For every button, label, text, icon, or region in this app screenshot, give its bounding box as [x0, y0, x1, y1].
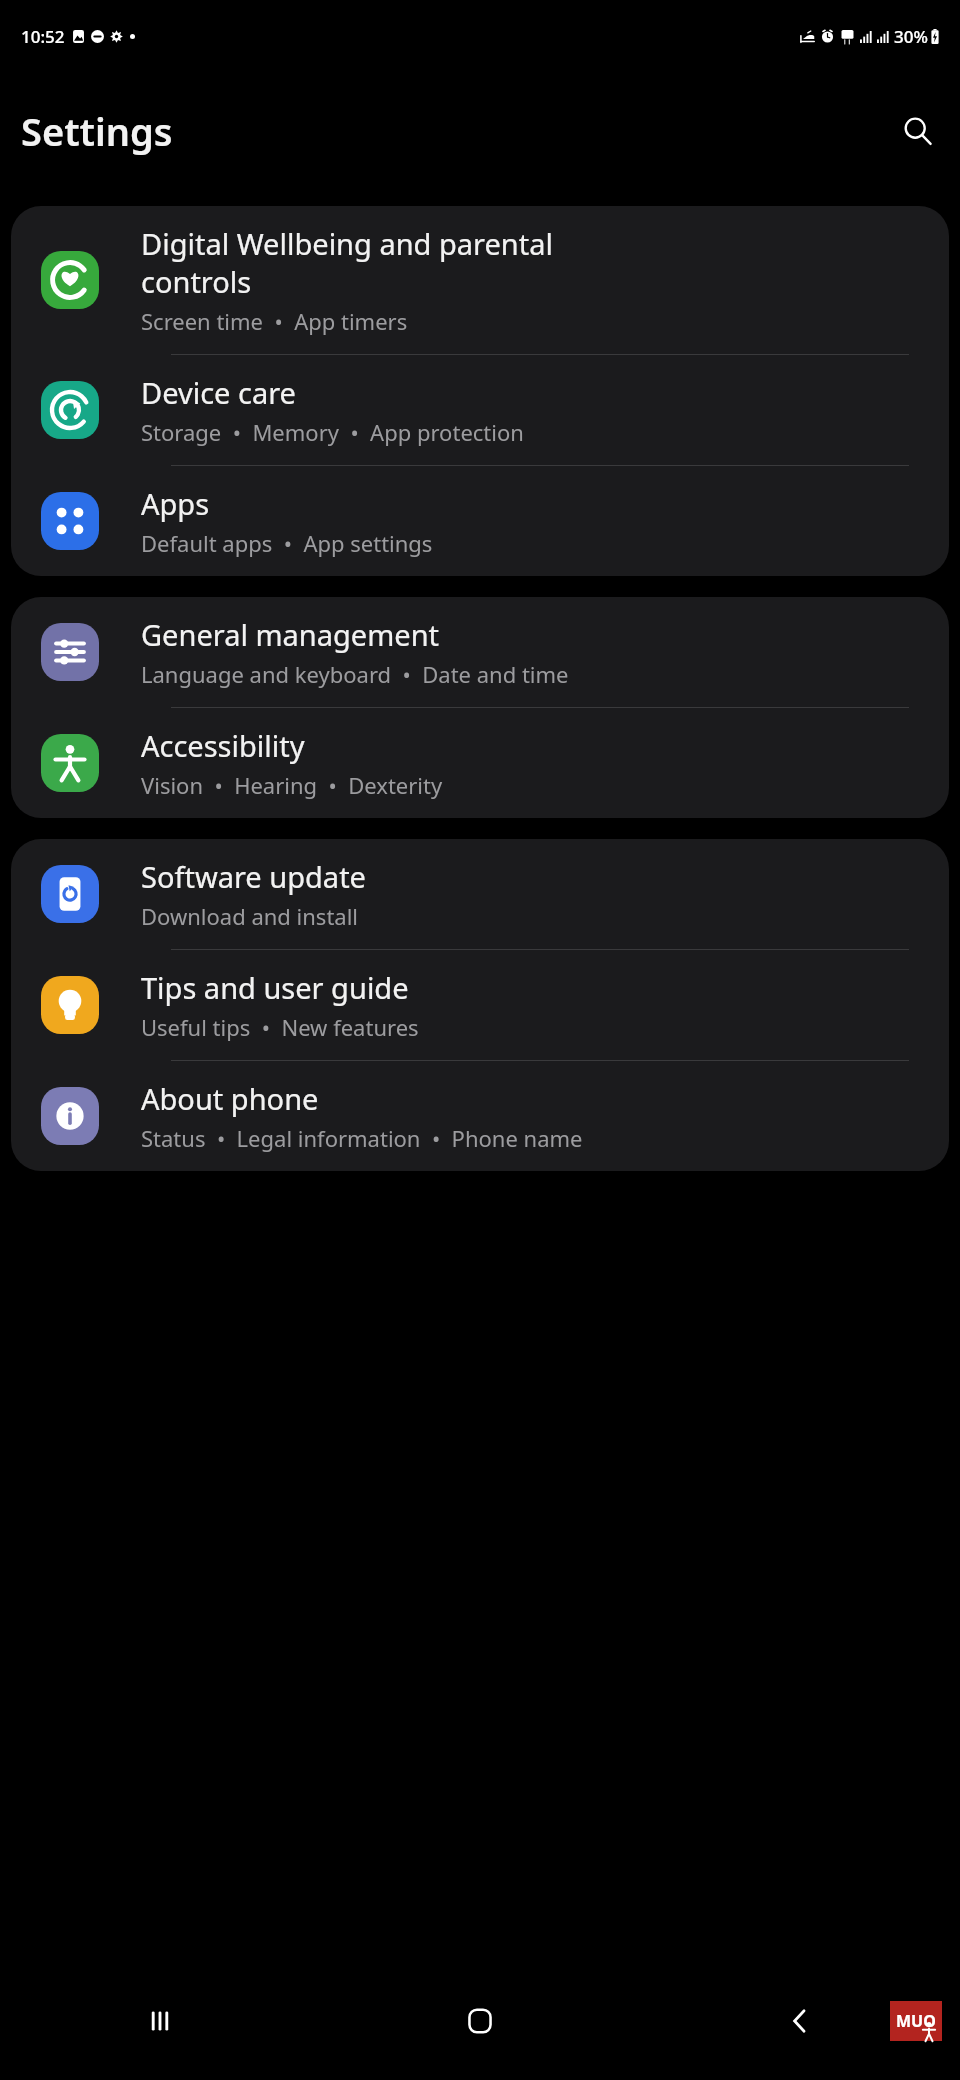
staticText: MUO	[896, 2010, 936, 2032]
staticText: Device care	[141, 373, 296, 412]
staticText: Vision • Hearing • Dexterity	[141, 770, 443, 800]
staticText: Apps	[141, 484, 210, 523]
staticText: Download and install	[141, 901, 359, 931]
staticText: Status • Legal information • Phone name	[141, 1123, 583, 1153]
staticText: Accessibility	[141, 726, 305, 765]
staticText: Screen time • App timers	[141, 306, 408, 336]
staticText: Useful tips • New features	[141, 1012, 419, 1042]
staticText: Default apps • App settings	[141, 528, 433, 558]
staticText: Settings	[21, 105, 173, 157]
button[interactable]: Tips and user guide	[11, 950, 949, 1060]
button[interactable]: Recent apps	[0, 1962, 320, 2080]
button[interactable]: Back	[640, 1962, 960, 2080]
staticText: Digital Wellbeing and parental controls	[141, 224, 553, 301]
staticText: 10:52	[21, 25, 65, 48]
staticText: About phone	[141, 1079, 319, 1118]
button[interactable]: Accessibility	[11, 708, 949, 818]
staticText: Tips and user guide	[141, 968, 409, 1007]
staticText: General management	[141, 615, 440, 654]
staticText: Software update	[141, 857, 366, 896]
staticText: Storage • Memory • App protection	[141, 417, 524, 447]
button[interactable]: Device care	[11, 355, 949, 465]
button[interactable]: Digital Wellbeing and parental controls	[11, 206, 949, 354]
staticText: Language and keyboard • Date and time	[141, 659, 569, 689]
button[interactable]: General management	[11, 597, 949, 707]
button[interactable]: Home	[320, 1962, 640, 2080]
button[interactable]: About phone	[11, 1061, 949, 1171]
staticText: 30%	[894, 25, 928, 48]
button[interactable]: Software update	[11, 839, 949, 949]
button[interactable]: Search	[894, 107, 942, 155]
button[interactable]: Apps	[11, 466, 949, 576]
